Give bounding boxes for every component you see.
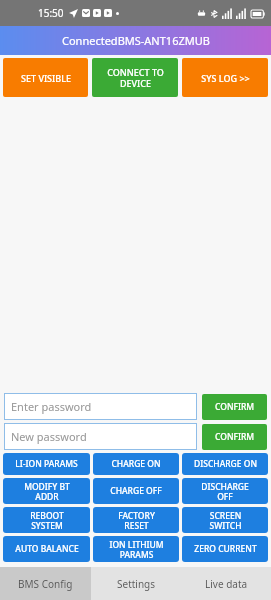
button[interactable]: REBOOT SYSTEM: [3, 507, 90, 533]
button[interactable]: LI-ION PARAMS: [3, 453, 90, 475]
button[interactable]: DISCHARGE OFF: [182, 478, 268, 504]
button[interactable]: CHARGE OFF: [93, 478, 179, 504]
staticText: Live data: [205, 577, 248, 591]
staticText: CONFIRM: [215, 431, 255, 443]
staticText: 15:50: [38, 6, 64, 20]
staticText: DISCHARGE OFF: [201, 481, 249, 502]
button[interactable]: New password: [4, 423, 197, 450]
staticText: SCREEN SWITCH: [209, 510, 242, 531]
staticText: ZERO CURRENT: [194, 543, 257, 555]
button[interactable]: SET VISIBLE: [3, 58, 88, 97]
button[interactable]: BMS Config: [0, 567, 91, 600]
staticText: SYS LOG >>: [201, 72, 250, 84]
staticText: New password: [11, 429, 87, 444]
button[interactable]: Settings: [91, 567, 181, 600]
button[interactable]: CHARGE ON: [93, 453, 179, 475]
staticText: SET VISIBLE: [21, 72, 71, 84]
staticText: DISCHARGE ON: [194, 458, 257, 470]
button[interactable]: SYS LOG >>: [182, 58, 268, 97]
button[interactable]: MODIFY BT ADDR: [3, 478, 90, 504]
button[interactable]: ZERO CURRENT: [182, 536, 268, 562]
staticText: CONFIRM: [215, 401, 255, 413]
button[interactable]: CONNECT TO DEVICE: [92, 58, 178, 97]
staticText: Enter password: [11, 399, 92, 414]
staticText: ION LITHIUM PARAMS: [109, 539, 164, 560]
staticText: REBOOT SYSTEM: [30, 510, 64, 531]
staticText: CHARGE ON: [111, 458, 161, 470]
staticText: CONNECT TO DEVICE: [107, 66, 164, 89]
button[interactable]: ION LITHIUM PARAMS: [93, 536, 179, 562]
staticText: CHARGE OFF: [110, 485, 162, 497]
staticText: MODIFY BT ADDR: [24, 481, 70, 502]
button[interactable]: Enter password: [4, 393, 197, 420]
button[interactable]: Live data: [181, 567, 271, 600]
button[interactable]: CONFIRM: [202, 424, 267, 450]
button[interactable]: SCREEN SWITCH: [182, 507, 268, 533]
staticText: FACTORY RESET: [118, 510, 155, 531]
staticText: AUTO BALANCE: [15, 543, 79, 555]
staticText: ConnectedBMS-ANT16ZMUB: [62, 33, 210, 48]
staticText: Settings: [117, 577, 156, 591]
button[interactable]: CONFIRM: [202, 394, 267, 420]
button[interactable]: FACTORY RESET: [93, 507, 179, 533]
button[interactable]: DISCHARGE ON: [182, 453, 268, 475]
staticText: LI-ION PARAMS: [15, 458, 78, 470]
staticText: BMS Config: [18, 577, 73, 591]
button[interactable]: AUTO BALANCE: [3, 536, 90, 562]
